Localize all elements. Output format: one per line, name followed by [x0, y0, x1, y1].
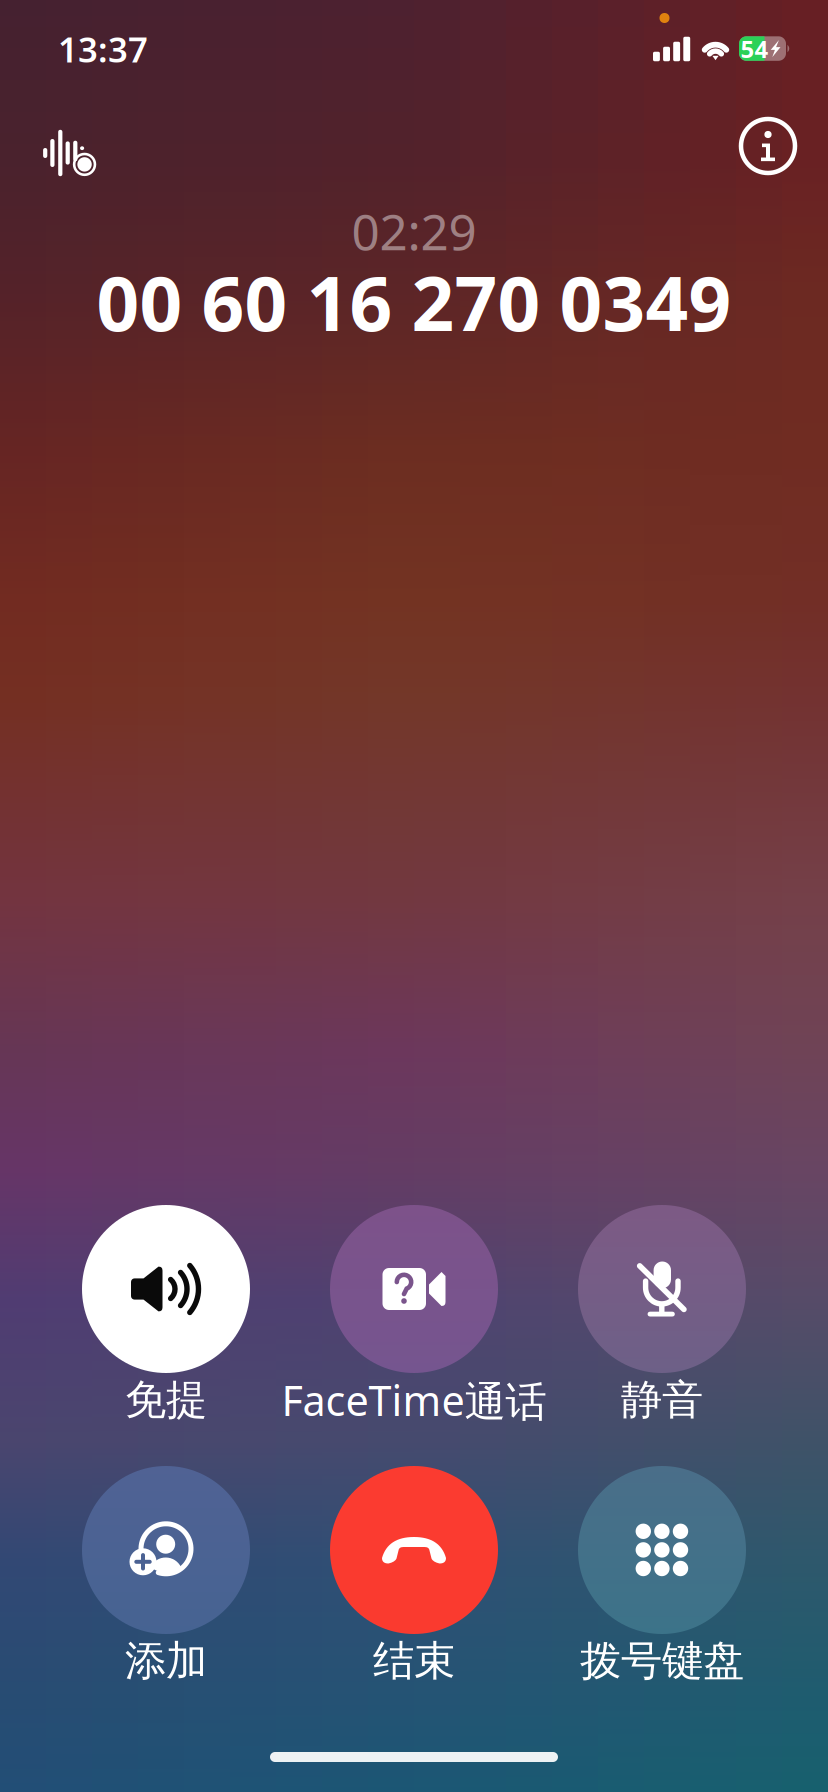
staticText: 02:29 — [351, 198, 476, 264]
button[interactable]: 拨号键盘 — [527, 1466, 797, 1704]
button[interactable]: 结束 — [279, 1466, 549, 1704]
button[interactable]: Call details — [730, 108, 806, 184]
staticText: FaceTime通话 — [281, 1372, 546, 1427]
button[interactable]: 静音 — [527, 1205, 797, 1443]
button[interactable]: FaceTime通话 — [279, 1205, 549, 1443]
staticText: 静音 — [621, 1375, 703, 1425]
staticText: 添加 — [125, 1636, 207, 1686]
button[interactable]: 免提 — [31, 1205, 301, 1443]
staticText: 54 — [740, 33, 768, 65]
staticText: 结束 — [373, 1636, 455, 1686]
staticText: 拨号键盘 — [580, 1636, 744, 1686]
staticText: 00 60 16 270 0349 — [96, 252, 731, 352]
button[interactable]: 添加 — [31, 1466, 301, 1704]
button[interactable]: Call recording — [31, 111, 111, 191]
staticText: 13:37 — [58, 26, 148, 72]
staticText: 免提 — [125, 1375, 207, 1425]
